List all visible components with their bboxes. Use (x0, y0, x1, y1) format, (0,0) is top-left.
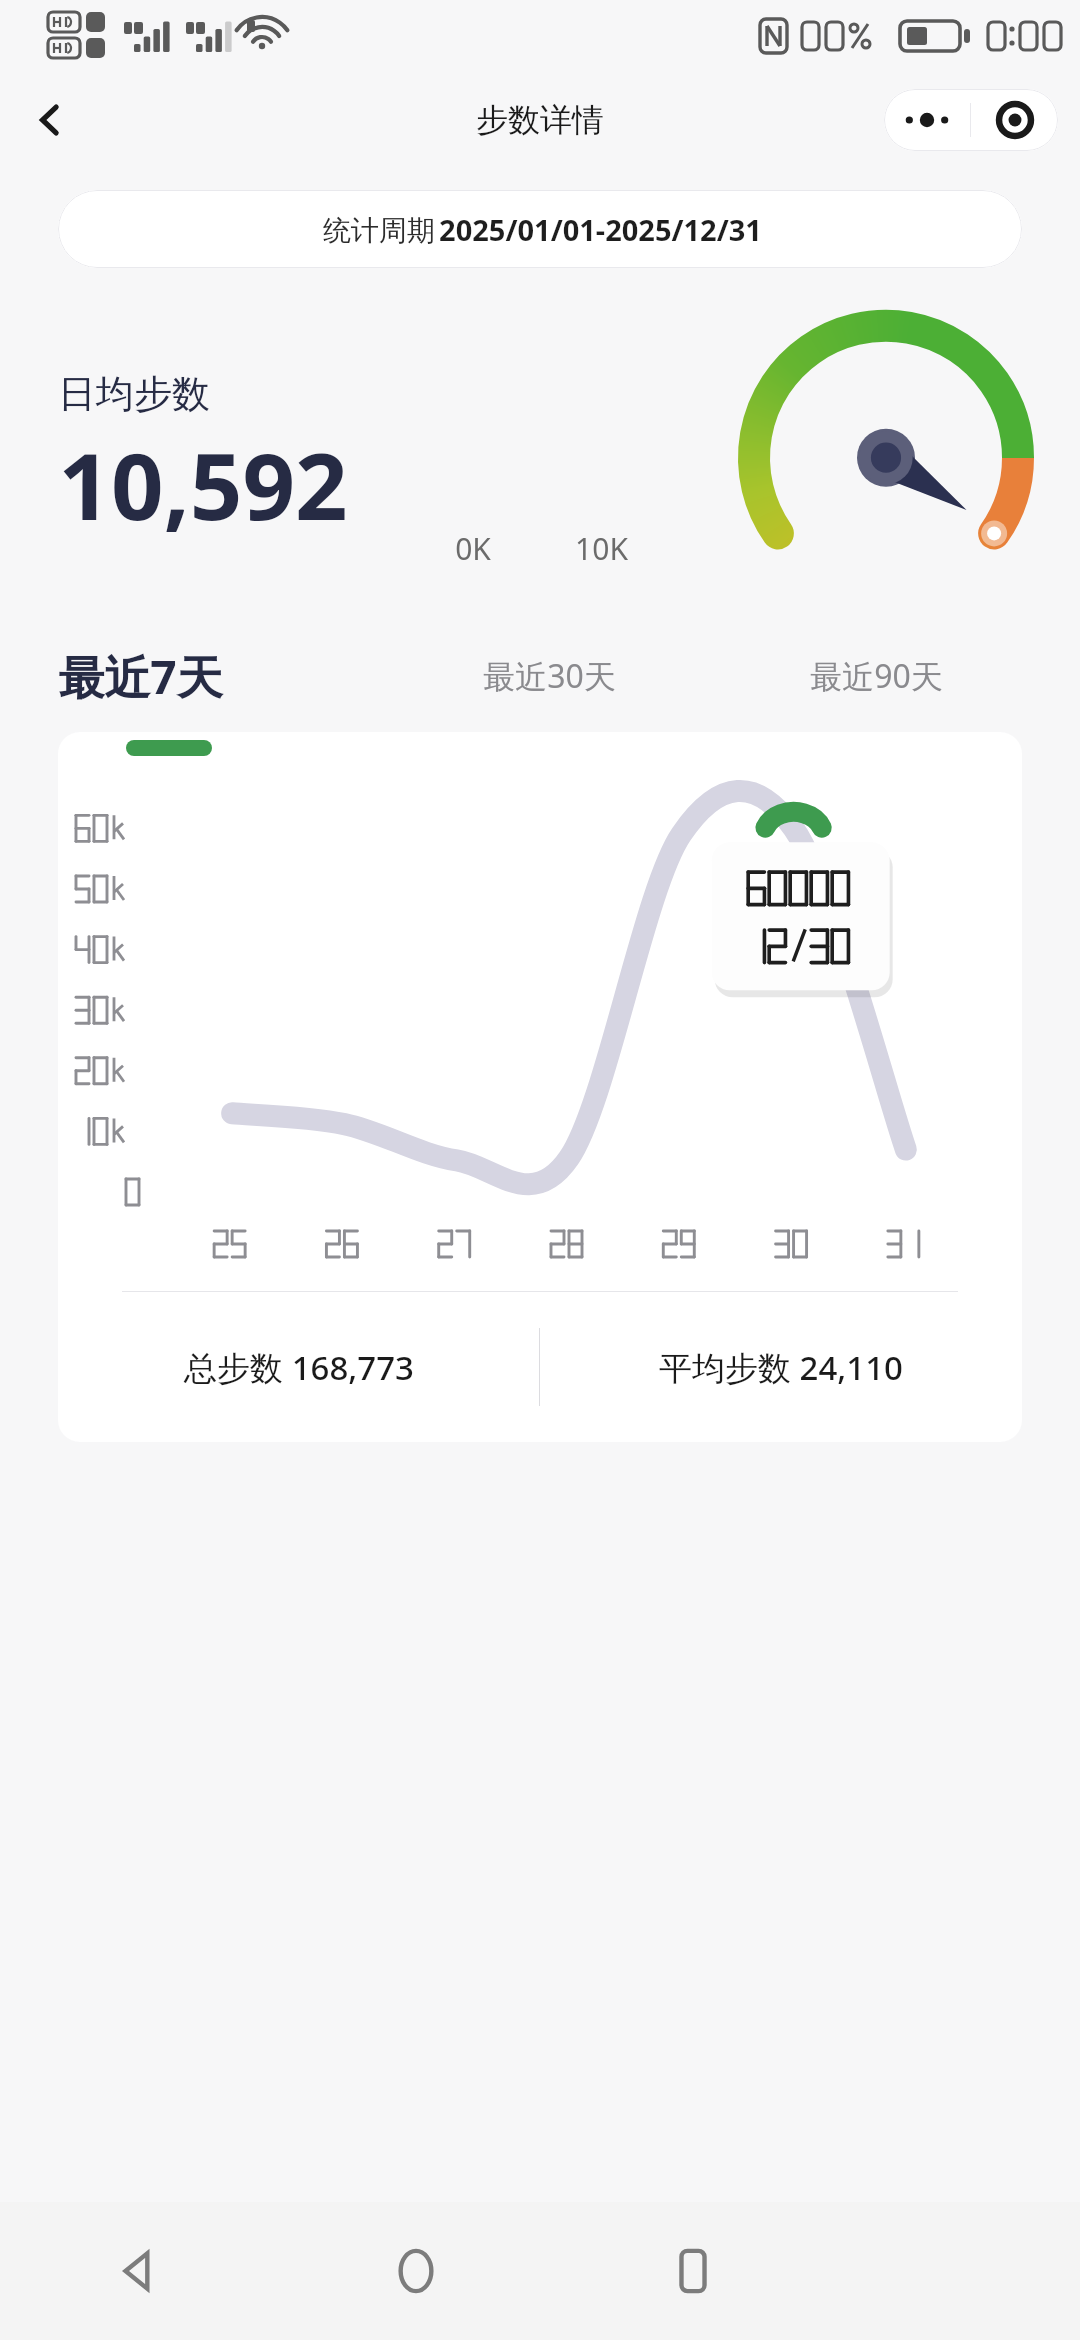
staticText: 最近30天 (483, 654, 616, 698)
staticText: 日均步数 (58, 370, 210, 418)
button[interactable]: More options (884, 89, 970, 151)
button[interactable]: Home (277, 2202, 554, 2340)
button[interactable]: 统计周期 (58, 190, 1022, 268)
button[interactable]: Back (18, 88, 82, 152)
staticText: 步数详情 (476, 100, 604, 140)
staticText: 平均步数 24,110 (659, 1345, 903, 1390)
button[interactable]: 最近30天 (386, 634, 713, 718)
button[interactable]: 最近7天 (58, 634, 386, 718)
button[interactable]: 最近90天 (713, 634, 1040, 718)
staticText: 10,592 (58, 422, 348, 547)
staticText: 0K (455, 528, 491, 569)
staticText: 总步数 168,773 (184, 1345, 414, 1390)
staticText: 10K (575, 528, 628, 569)
staticText: 最近90天 (810, 654, 943, 698)
button[interactable]: Mini program capsule (971, 89, 1058, 151)
staticText: 统计周期 (319, 210, 439, 248)
button[interactable]: Recent apps (554, 2202, 831, 2340)
staticText: 2025/01/01-2025/12/31 (439, 210, 762, 249)
staticText: 最近7天 (58, 645, 223, 708)
button[interactable]: Back (0, 2202, 277, 2340)
